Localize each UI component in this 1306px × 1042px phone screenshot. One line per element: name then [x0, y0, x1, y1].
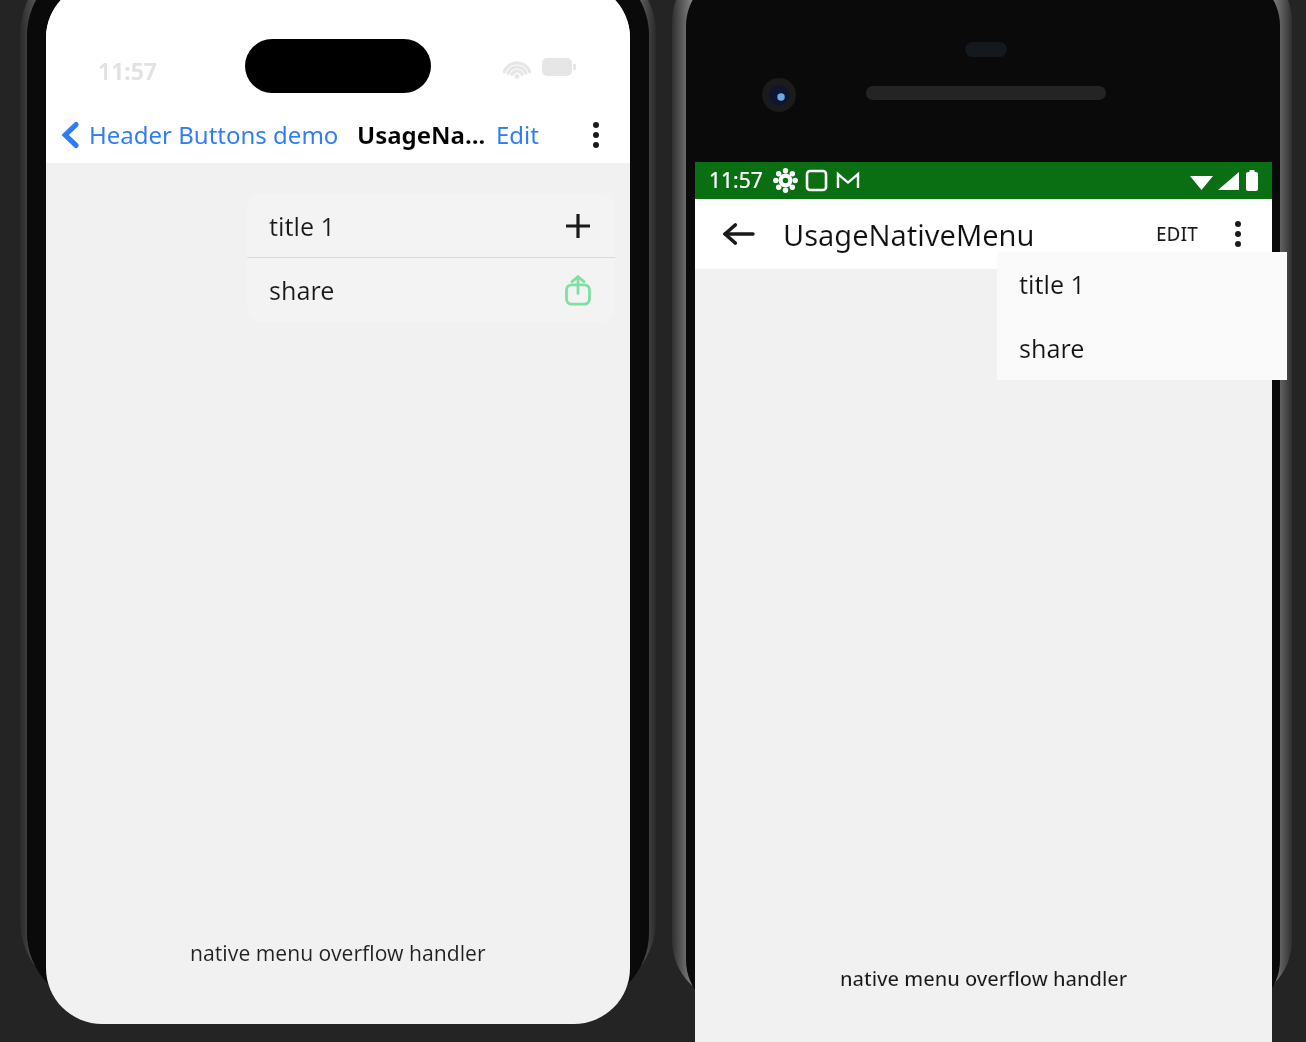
button[interactable]: More options	[580, 119, 612, 151]
button[interactable]: title 1	[247, 194, 615, 257]
staticText: native menu overflow handler	[840, 965, 1128, 992]
staticText: UsageNativeMenu	[783, 215, 1035, 254]
staticText: 11:57	[709, 166, 763, 195]
button[interactable]: Edit	[496, 118, 539, 151]
staticText: Header Buttons demo	[89, 118, 339, 151]
button[interactable]: Header Buttons demo	[58, 118, 343, 151]
button[interactable]: share	[997, 316, 1287, 380]
staticText: share	[269, 273, 335, 307]
button[interactable]: EDIT	[1148, 211, 1206, 257]
button[interactable]: More options	[1220, 216, 1256, 252]
staticText: UsageNa...	[357, 118, 486, 151]
staticText: share	[1019, 331, 1085, 365]
button[interactable]: title 1	[997, 252, 1287, 316]
staticText: title 1	[1019, 267, 1085, 301]
staticText: title 1	[269, 209, 335, 243]
button[interactable]: Back	[717, 212, 761, 256]
button[interactable]: share	[247, 258, 615, 322]
staticText: 11:57	[98, 55, 157, 86]
staticText: native menu overflow handler	[190, 939, 486, 968]
